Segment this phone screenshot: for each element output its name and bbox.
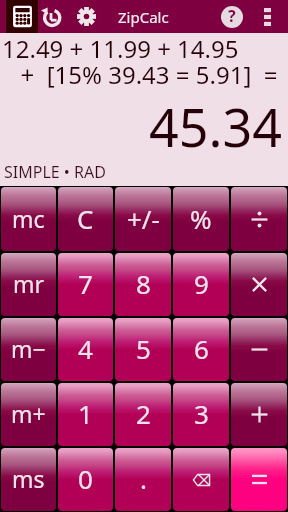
button[interactable]: mr bbox=[1, 253, 56, 316]
button[interactable]: Multiply bbox=[231, 253, 287, 316]
button[interactable]: C bbox=[58, 187, 113, 251]
staticText: ? bbox=[228, 5, 236, 27]
button[interactable]: 7 bbox=[58, 253, 113, 316]
staticText: 4 bbox=[78, 331, 93, 366]
button[interactable]: Minus bbox=[231, 318, 287, 381]
staticText: 8 bbox=[136, 266, 151, 301]
staticText: 12.49 + 11.99 + 14.95 bbox=[2, 32, 239, 65]
staticText: mc bbox=[12, 203, 45, 234]
button[interactable]: . bbox=[115, 448, 171, 511]
staticText: + [15% 39.43 = 5.91] = bbox=[10, 58, 288, 91]
button[interactable]: 5 bbox=[115, 318, 171, 381]
button[interactable]: 2 bbox=[115, 383, 171, 446]
staticText: 5 bbox=[136, 331, 151, 366]
button[interactable]: Plus bbox=[231, 383, 287, 446]
button[interactable]: 1 bbox=[58, 383, 113, 446]
button[interactable]: Settings bbox=[72, 0, 100, 33]
staticText: 3 bbox=[194, 396, 209, 431]
button[interactable]: ms bbox=[1, 448, 56, 511]
button[interactable]: % bbox=[173, 187, 229, 251]
staticText: 7 bbox=[78, 266, 93, 301]
button[interactable]: 4 bbox=[58, 318, 113, 381]
staticText: +/- bbox=[127, 201, 160, 236]
button[interactable]: Divide bbox=[231, 187, 287, 251]
button[interactable]: m− bbox=[1, 318, 56, 381]
staticText: . bbox=[140, 461, 147, 496]
staticText: mr bbox=[13, 268, 45, 299]
staticText: ZipCalc bbox=[118, 7, 169, 27]
button[interactable]: Backspace bbox=[173, 448, 229, 511]
staticText: 45.34 bbox=[0, 91, 282, 162]
staticText: 0 bbox=[78, 461, 93, 496]
staticText: 2 bbox=[136, 396, 151, 431]
button[interactable]: 0 bbox=[58, 448, 113, 511]
staticText: m− bbox=[11, 333, 46, 364]
button[interactable]: More options bbox=[256, 0, 278, 33]
staticText: SIMPLE • RAD bbox=[4, 161, 106, 183]
button[interactable]: ZipCalc bbox=[6, 0, 38, 33]
button[interactable]: +/- bbox=[115, 187, 171, 251]
button[interactable]: mc bbox=[1, 187, 56, 251]
button[interactable]: Equals bbox=[231, 448, 287, 511]
button[interactable]: 8 bbox=[115, 253, 171, 316]
staticText: C bbox=[77, 201, 94, 236]
staticText: 9 bbox=[194, 266, 209, 301]
button[interactable]: History bbox=[38, 0, 64, 33]
staticText: ms bbox=[12, 463, 45, 494]
staticText: 1 bbox=[78, 396, 93, 431]
button[interactable]: Help bbox=[218, 0, 246, 33]
button[interactable]: 9 bbox=[173, 253, 229, 316]
button[interactable]: m+ bbox=[1, 383, 56, 446]
staticText: % bbox=[190, 201, 212, 236]
staticText: 6 bbox=[194, 331, 209, 366]
staticText: m+ bbox=[11, 398, 46, 429]
button[interactable]: 6 bbox=[173, 318, 229, 381]
button[interactable]: 3 bbox=[173, 383, 229, 446]
